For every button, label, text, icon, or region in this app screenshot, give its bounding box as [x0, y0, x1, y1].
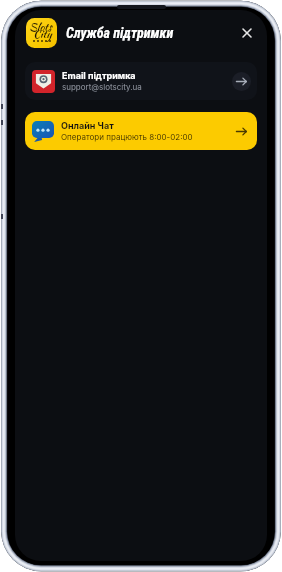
staticText: support@slotscity.ua	[62, 82, 142, 92]
staticText: Оператори працюють 8:00-02:00	[61, 132, 193, 142]
staticText: Email підтримка	[62, 70, 136, 81]
button[interactable]: Перейти	[232, 72, 251, 91]
button[interactable]: Закрити	[234, 20, 260, 46]
button[interactable]: Email підтримка	[25, 62, 257, 100]
staticText: City	[33, 26, 52, 42]
button[interactable]: Slots City	[26, 18, 57, 48]
button[interactable]: Онлайн Чат	[25, 112, 257, 150]
staticText: Онлайн Чат	[61, 120, 114, 131]
staticText: Служба підтримки	[66, 25, 174, 41]
staticText: Slots	[29, 19, 52, 35]
button[interactable]: Перейти	[232, 122, 251, 141]
